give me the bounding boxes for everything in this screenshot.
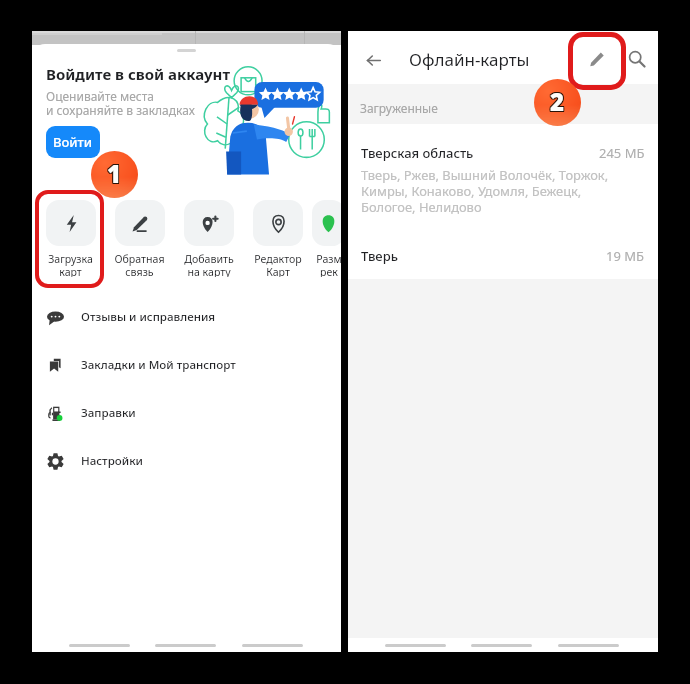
button[interactable]: Recents xyxy=(558,644,619,647)
staticText: Закладки и Мой транспорт xyxy=(81,357,236,373)
button[interactable]: Отзывы и исправления xyxy=(32,293,341,341)
staticText: Тверь xyxy=(361,247,398,265)
staticText: Оценивайте места и сохраняйте в закладка… xyxy=(46,88,195,119)
staticText: 2 xyxy=(549,86,564,119)
staticText: 2 xyxy=(550,86,565,119)
button[interactable]: Настройки xyxy=(32,437,341,485)
button[interactable]: Добавить на карту xyxy=(174,193,243,277)
staticText: Настройки xyxy=(81,453,143,469)
button[interactable]: Разм рек xyxy=(312,193,341,277)
button[interactable]: Редактор Карт xyxy=(243,193,312,277)
staticText: 2 xyxy=(551,85,566,118)
staticText: 19 МБ xyxy=(606,247,645,265)
button[interactable]: Back xyxy=(385,644,446,647)
button[interactable]: Home xyxy=(471,644,532,647)
staticText: 1 xyxy=(108,156,123,189)
button[interactable]: Закладки и Мой транспорт xyxy=(32,341,341,389)
staticText: Обратная связь xyxy=(114,252,165,277)
staticText: Загруженные xyxy=(360,100,438,116)
staticText: 1 xyxy=(107,158,122,191)
staticText: Войдите в свой аккаунт xyxy=(46,64,230,84)
button[interactable]: Войти xyxy=(46,126,100,158)
staticText: Тверь, Ржев, Вышний Волочёк, Торжок, Ким… xyxy=(361,166,609,216)
button[interactable]: Загрузка карт xyxy=(36,193,105,277)
staticText: 1 xyxy=(106,156,121,189)
button[interactable]: Home xyxy=(155,644,216,647)
staticText: 2 xyxy=(551,86,566,119)
staticText: Добавить на карту xyxy=(184,252,234,277)
staticText: Разм рек xyxy=(316,252,341,277)
staticText: Заправки xyxy=(81,405,136,421)
button[interactable]: Обратная связь xyxy=(105,193,174,277)
staticText: 1 xyxy=(106,157,121,190)
staticText: 2 xyxy=(550,84,565,117)
staticText: 1 xyxy=(106,158,121,191)
button[interactable]: Заправки xyxy=(32,389,341,437)
staticText: 1 xyxy=(108,157,123,190)
button[interactable]: Тверь xyxy=(348,233,658,279)
staticText: 2 xyxy=(551,84,566,117)
staticText: 1 xyxy=(107,156,122,189)
staticText: Редактор Карт xyxy=(254,252,302,277)
button[interactable]: Back xyxy=(69,644,130,647)
staticText: Загрузка карт xyxy=(48,252,93,277)
staticText: Войти xyxy=(53,133,93,151)
button[interactable]: Тверская область xyxy=(348,124,658,233)
staticText: 245 МБ xyxy=(599,144,645,162)
button[interactable]: Edit xyxy=(582,44,612,74)
staticText: 1 xyxy=(108,158,123,191)
staticText: Офлайн-карты xyxy=(409,48,530,71)
staticText: 2 xyxy=(550,85,565,118)
staticText: Отзывы и исправления xyxy=(81,309,216,325)
button[interactable]: Recents xyxy=(242,644,303,647)
button[interactable]: Back xyxy=(358,45,388,75)
button[interactable]: Search xyxy=(622,44,652,74)
staticText: 2 xyxy=(549,84,564,117)
staticText: 2 xyxy=(549,85,564,118)
staticText: 1 xyxy=(107,157,122,190)
staticText: Тверская область xyxy=(361,144,474,162)
